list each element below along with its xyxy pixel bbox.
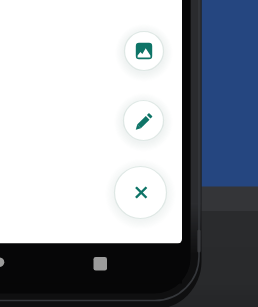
button[interactable]: [115, 22, 173, 80]
button[interactable]: [105, 157, 176, 228]
button[interactable]: [0, 254, 8, 271]
button[interactable]: [91, 254, 109, 272]
button[interactable]: [114, 91, 173, 150]
